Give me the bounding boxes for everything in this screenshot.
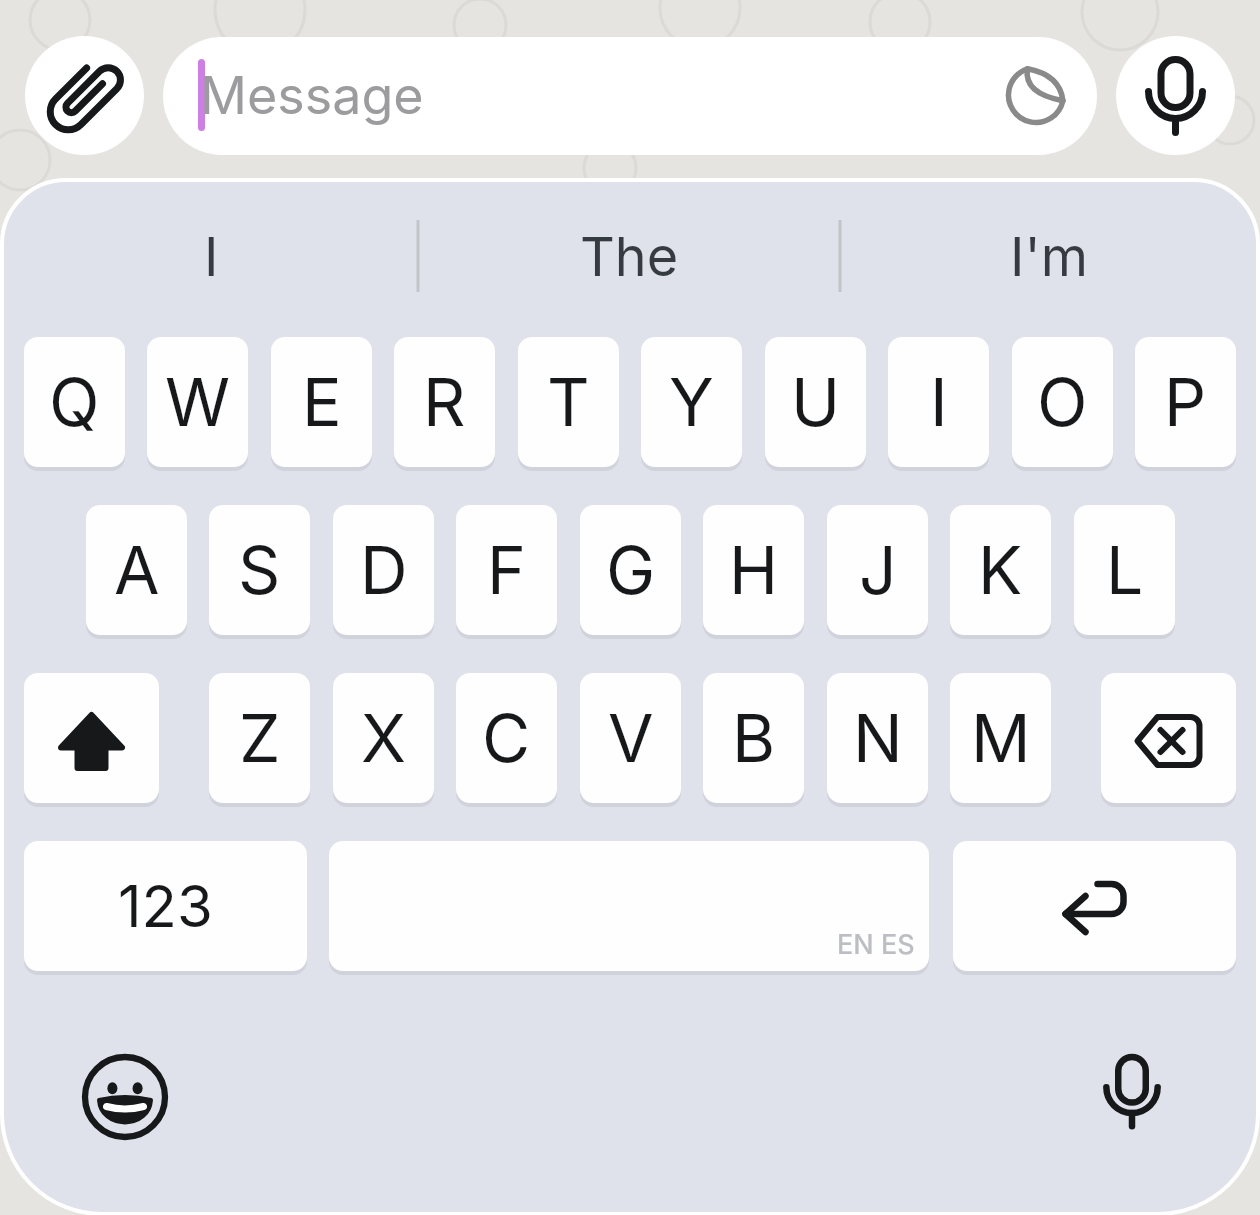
staticText: I'm: [1010, 224, 1088, 289]
staticText: W: [165, 362, 231, 442]
button[interactable]: Message: [163, 37, 1097, 155]
staticText: Z: [239, 698, 281, 778]
staticText: EN ES: [837, 928, 915, 961]
staticText: A: [114, 530, 160, 610]
staticText: P: [1164, 362, 1207, 442]
button[interactable]: [25, 36, 144, 155]
staticText: Q: [49, 362, 100, 442]
button[interactable]: 123: [24, 841, 307, 971]
button[interactable]: EN ES: [329, 841, 929, 971]
button[interactable]: D: [333, 505, 434, 635]
button[interactable]: R: [394, 337, 495, 467]
button[interactable]: [61, 1033, 189, 1161]
staticText: R: [423, 362, 466, 442]
staticText: B: [732, 698, 776, 778]
button[interactable]: O: [1012, 337, 1113, 467]
button[interactable]: F: [456, 505, 557, 635]
staticText: I: [930, 362, 948, 442]
staticText: C: [482, 698, 531, 778]
staticText: X: [361, 698, 407, 778]
button[interactable]: [1068, 1029, 1196, 1157]
button[interactable]: K: [950, 505, 1051, 635]
button[interactable]: S: [209, 505, 310, 635]
staticText: J: [859, 530, 897, 610]
button[interactable]: H: [703, 505, 804, 635]
button[interactable]: I'm: [839, 196, 1258, 316]
button[interactable]: [24, 673, 159, 803]
button[interactable]: Q: [24, 337, 125, 467]
staticText: T: [547, 362, 590, 442]
staticText: The: [580, 224, 679, 289]
button[interactable]: I: [888, 337, 989, 467]
staticText: 123: [118, 871, 213, 941]
staticText: D: [360, 530, 408, 610]
staticText: L: [1106, 530, 1144, 610]
staticText: H: [729, 530, 779, 610]
button[interactable]: E: [271, 337, 372, 467]
button[interactable]: I: [2, 196, 420, 316]
staticText: S: [238, 530, 281, 610]
staticText: Message: [200, 64, 424, 127]
staticText: G: [606, 530, 656, 610]
staticText: V: [608, 698, 654, 778]
staticText: Y: [669, 362, 714, 442]
button[interactable]: C: [456, 673, 557, 803]
button[interactable]: [1116, 36, 1235, 155]
button[interactable]: U: [765, 337, 866, 467]
button[interactable]: [953, 841, 1236, 971]
staticText: M: [971, 698, 1031, 778]
staticText: F: [487, 530, 526, 610]
button[interactable]: P: [1135, 337, 1236, 467]
button[interactable]: Y: [641, 337, 742, 467]
button[interactable]: B: [703, 673, 804, 803]
button[interactable]: Z: [209, 673, 310, 803]
button[interactable]: M: [950, 673, 1051, 803]
staticText: O: [1037, 362, 1088, 442]
button[interactable]: G: [580, 505, 681, 635]
button[interactable]: [1101, 673, 1236, 803]
button[interactable]: X: [333, 673, 434, 803]
button[interactable]: V: [580, 673, 681, 803]
staticText: K: [978, 530, 1023, 610]
staticText: E: [302, 362, 342, 442]
button[interactable]: A: [86, 505, 187, 635]
staticText: U: [791, 362, 841, 442]
button[interactable]: N: [827, 673, 928, 803]
staticText: I: [204, 224, 219, 289]
button[interactable]: J: [827, 505, 928, 635]
button[interactable]: L: [1074, 505, 1175, 635]
staticText: N: [853, 698, 903, 778]
button[interactable]: The: [420, 196, 839, 316]
button[interactable]: T: [518, 337, 619, 467]
button[interactable]: W: [147, 337, 248, 467]
